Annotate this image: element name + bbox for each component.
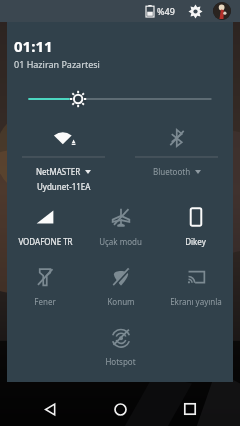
button[interactable]: Flashlight xyxy=(7,259,83,319)
button[interactable]: Airplane mode xyxy=(83,199,158,259)
button[interactable]: Rotation xyxy=(158,199,233,259)
staticText: Hotspot xyxy=(105,356,136,367)
staticText: Ekranı yayınla xyxy=(170,296,222,307)
button[interactable]: Bluetooth xyxy=(120,119,233,193)
button[interactable]: Cast screen xyxy=(158,259,233,319)
staticText: VODAFONE TR xyxy=(18,236,73,247)
staticText: Dikey xyxy=(185,236,206,247)
staticText: Uçak modu xyxy=(99,236,142,247)
button[interactable]: Settings xyxy=(185,1,205,21)
button[interactable]: Recent apps xyxy=(170,392,210,426)
button[interactable]: Mobile data xyxy=(7,199,83,259)
button[interactable]: Hotspot xyxy=(83,319,158,379)
button[interactable]: User profile xyxy=(213,2,231,20)
button[interactable]: Home xyxy=(100,392,140,426)
button[interactable]: Wi-Fi xyxy=(7,119,120,193)
staticText: NetMASTER xyxy=(36,166,81,177)
staticText: 01 Haziran Pazartesi xyxy=(14,58,100,70)
staticText: %49 xyxy=(157,5,175,17)
button[interactable]: Brightness xyxy=(7,87,233,111)
staticText: Fener xyxy=(34,296,56,307)
button[interactable]: Back xyxy=(30,392,70,426)
staticText: Uydunet-11EA xyxy=(37,181,91,192)
staticText: Konum xyxy=(107,296,135,307)
button[interactable]: Location xyxy=(83,259,158,319)
staticText: 01:11 xyxy=(14,36,53,56)
staticText: Bluetooth xyxy=(153,166,191,177)
